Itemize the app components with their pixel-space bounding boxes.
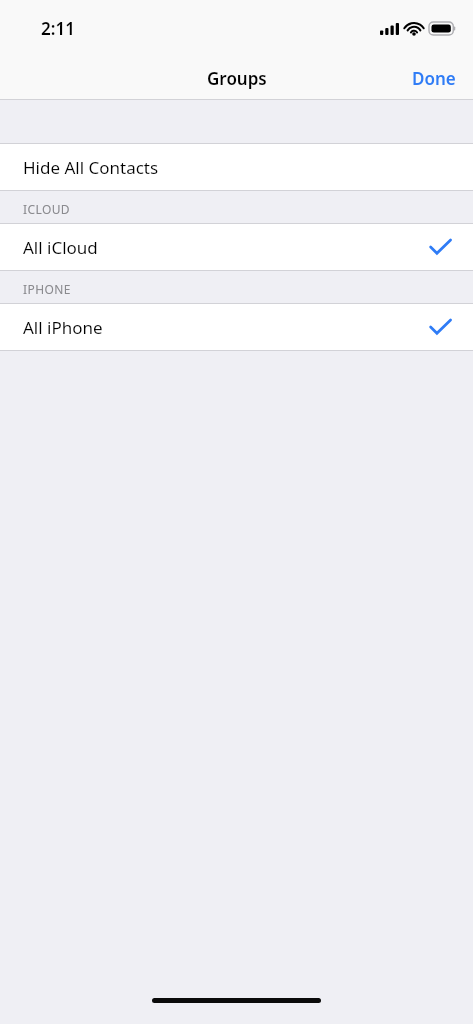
staticText: All iCloud: [23, 236, 98, 259]
other: Selected: [430, 319, 451, 335]
staticText: ICLOUD: [23, 201, 71, 217]
button[interactable]: Done: [395, 56, 473, 100]
staticText: Hide All Contacts: [23, 156, 159, 179]
staticText: IPHONE: [23, 281, 71, 297]
staticText: Done: [412, 67, 456, 89]
other: Selected: [430, 239, 451, 255]
button[interactable]: All iPhone: [0, 304, 473, 350]
staticText: All iPhone: [23, 316, 103, 339]
button[interactable]: Hide All Contacts: [0, 144, 473, 190]
button[interactable]: All iCloud: [0, 224, 473, 270]
staticText: 2:11: [41, 17, 75, 40]
staticText: Groups: [207, 67, 267, 90]
